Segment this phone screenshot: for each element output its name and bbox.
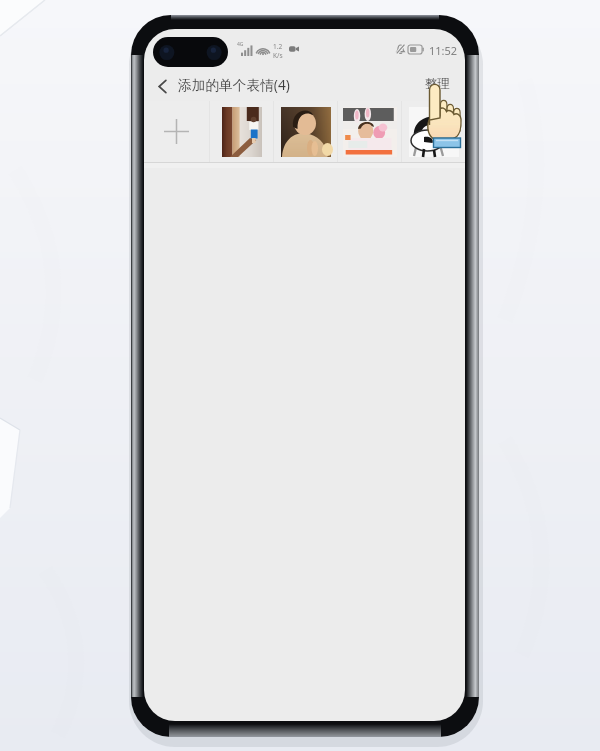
button[interactable]: Sticker 1 [210, 101, 273, 162]
button[interactable]: 整理 [420, 72, 455, 100]
button[interactable]: Sticker 2 [274, 101, 337, 162]
staticText: 1.2 [273, 42, 283, 51]
staticText: 添加的单个表情(4) [178, 75, 290, 94]
button[interactable]: Sticker 4 [402, 101, 465, 162]
staticText: 4G [237, 41, 244, 48]
button[interactable]: Sticker 3 [338, 101, 401, 162]
button[interactable]: Back [148, 73, 174, 99]
button[interactable]: Add sticker [144, 101, 209, 162]
staticText: 11:52 [429, 43, 458, 58]
staticText: K/s [273, 51, 283, 60]
staticText: 整理 [425, 76, 450, 92]
